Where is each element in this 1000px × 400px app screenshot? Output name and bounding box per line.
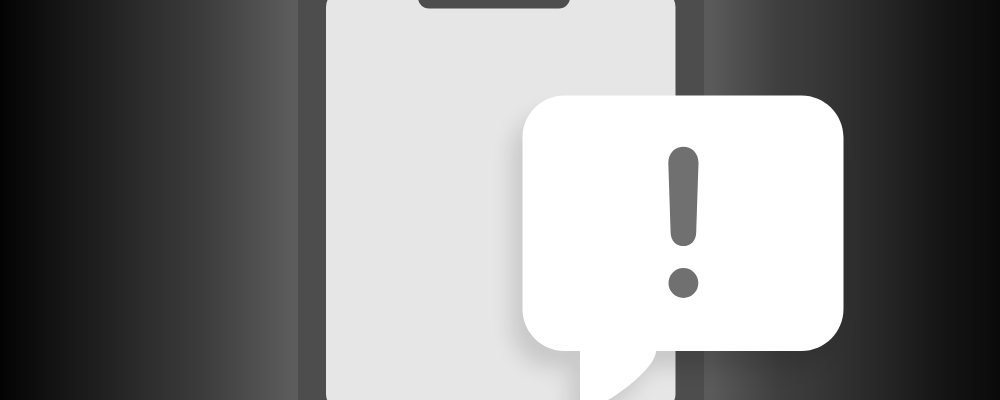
button[interactable]: Illustration: phone showing an alert mes… <box>0 0 1000 400</box>
